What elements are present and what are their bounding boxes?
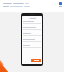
button[interactable] [28, 17, 37, 19]
button[interactable] [31, 59, 41, 62]
button[interactable]: Open menu [59, 2, 62, 5]
